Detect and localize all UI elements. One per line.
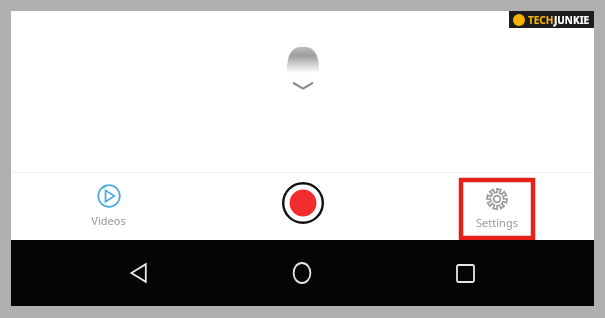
staticText: TECH (528, 13, 554, 27)
button[interactable]: Back (115, 249, 163, 297)
staticText: Settings (476, 215, 518, 230)
button[interactable]: Home (278, 249, 326, 297)
button[interactable]: Record (282, 182, 324, 224)
staticText: JUNKIE (554, 13, 590, 27)
button[interactable]: Recent apps (441, 249, 489, 297)
button[interactable]: Expand controls (276, 45, 330, 107)
button[interactable]: Videos (91, 184, 126, 228)
button[interactable]: Settings (459, 178, 535, 240)
staticText: Videos (91, 213, 126, 228)
